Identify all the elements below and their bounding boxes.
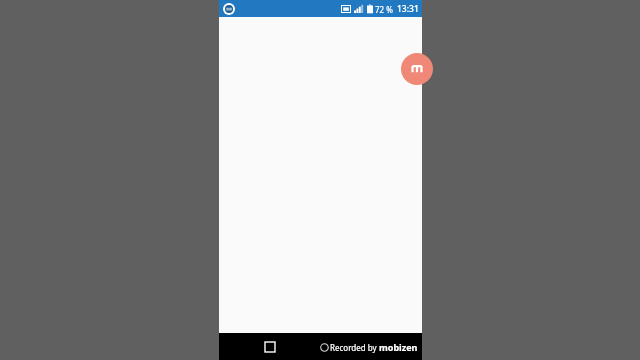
staticText: mobizen [379,341,418,353]
button[interactable]: Recent apps [259,336,281,358]
staticText: 13:31 [397,3,419,15]
button[interactable]: Mobizen recorder [401,53,433,85]
staticText: Recorded by [330,342,377,353]
staticText: 72 % [375,4,393,15]
